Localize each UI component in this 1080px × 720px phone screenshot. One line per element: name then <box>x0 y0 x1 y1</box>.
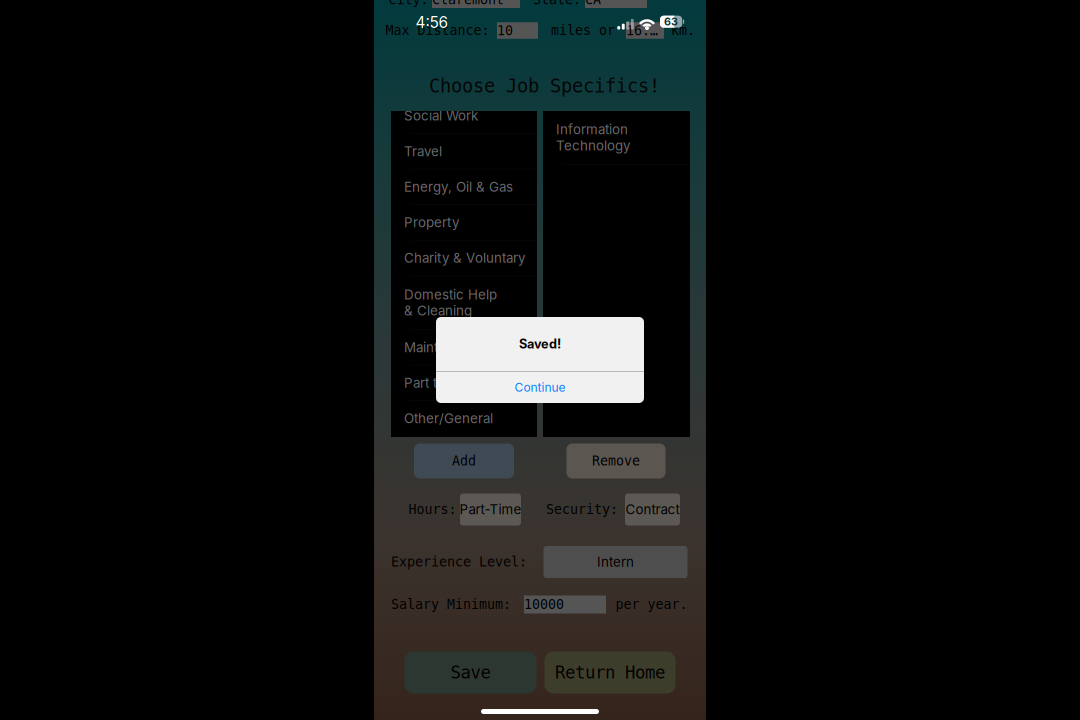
staticText: Continue <box>514 380 565 395</box>
staticText: 10 <box>497 23 513 38</box>
staticText: Hours: <box>408 502 456 517</box>
staticText: Intern <box>597 554 634 570</box>
staticText: Information Technology <box>556 121 630 154</box>
staticText: miles or <box>551 22 615 38</box>
staticText: Maintenance <box>404 339 485 355</box>
button[interactable]: Part-Time <box>460 493 521 525</box>
staticText: Other/General <box>404 410 493 426</box>
staticText: City: <box>388 0 428 7</box>
staticText: Remove <box>592 453 640 469</box>
staticText: Part-Time <box>459 501 521 517</box>
staticText: Travel <box>404 143 442 159</box>
staticText: 16.… <box>626 23 658 38</box>
button[interactable]: Intern <box>543 546 687 578</box>
staticText: 63 <box>664 15 678 28</box>
staticText: Domestic Help & Cleaning <box>404 286 497 319</box>
button[interactable]: Return Home <box>544 651 675 693</box>
staticText: Charity & Voluntary <box>404 250 525 266</box>
staticText: State: <box>533 0 581 7</box>
button[interactable]: Contract <box>625 493 680 525</box>
button[interactable]: Remove <box>566 443 665 478</box>
staticText: Part time <box>404 375 460 391</box>
staticText: Save <box>450 662 490 683</box>
button[interactable]: Add <box>414 443 514 478</box>
staticText: Salary Minimum: <box>391 597 511 612</box>
staticText: Add <box>452 453 476 469</box>
staticText: Return Home <box>555 662 665 683</box>
staticText: Experience Level: <box>391 554 527 570</box>
staticText: Saved! <box>519 336 561 352</box>
button[interactable]: Continue <box>436 372 644 403</box>
staticText: Social Work <box>404 108 478 124</box>
staticText: Max Distance: <box>385 22 489 38</box>
staticText: per year. <box>615 597 687 612</box>
staticText: 10000 <box>524 597 564 612</box>
staticText: Security: <box>546 502 618 517</box>
staticText: Claremont <box>432 0 504 7</box>
staticText: 4:56 <box>415 13 448 32</box>
staticText: Choose Job Specifics! <box>429 75 660 97</box>
staticText: Contract <box>625 501 679 517</box>
staticText: CA <box>585 0 601 7</box>
staticText: km. <box>671 22 695 38</box>
button[interactable]: Save <box>404 651 536 693</box>
staticText: Energy, Oil & Gas <box>404 179 513 195</box>
staticText: Property <box>404 214 459 230</box>
